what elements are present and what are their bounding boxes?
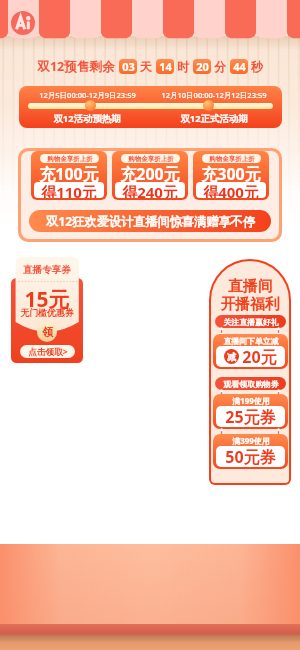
staticText: 双12活动预热期 [53, 112, 121, 125]
staticText: 得110元 [41, 182, 97, 198]
staticText: 12月5日00:00-12月9日23:59 [39, 90, 136, 100]
staticText: 关注直播赢好礼 [223, 317, 279, 327]
button[interactable]: 直播专享券 [11, 257, 83, 363]
button[interactable]: 关注直播赢好礼 [215, 315, 286, 328]
button[interactable]: 领 [37, 322, 57, 342]
staticText: 03 [122, 59, 135, 74]
staticText: 秒 [251, 59, 263, 74]
button[interactable]: 点击领取> [20, 345, 75, 358]
staticText: 天 [140, 59, 152, 74]
button[interactable]: Brand logo [11, 11, 35, 35]
staticText: 满199使用 [232, 396, 270, 407]
button[interactable]: 购物金享折上折 [31, 151, 107, 200]
staticText: 双12正式活动期 [180, 112, 248, 125]
staticText: 购物金享折上折 [47, 155, 93, 163]
staticText: 得400元 [203, 182, 259, 198]
button[interactable]: 直播间下单立减 [213, 334, 288, 369]
staticText: 充200元 [120, 163, 180, 185]
staticText: 满399使用 [232, 436, 270, 447]
staticText: 得240元 [122, 182, 178, 198]
staticText: 点击领取> [28, 346, 68, 358]
staticText: 领 [42, 325, 53, 339]
staticText: 44 [233, 59, 246, 74]
button[interactable]: 购物金享折上折 [112, 151, 188, 200]
staticText: 直播间下单立减 [223, 336, 279, 346]
staticText: 开播福利 [220, 295, 280, 314]
staticText: 20 [196, 59, 209, 74]
staticText: 观看领取购物券 [223, 379, 279, 389]
staticText: 减 [227, 351, 236, 362]
staticText: 20元 [242, 346, 277, 367]
staticText: 15元 [24, 285, 70, 314]
button[interactable]: 观看领取购物券 [215, 377, 286, 390]
staticText: 直播间 [228, 277, 273, 296]
staticText: 购物金享折上折 [209, 155, 255, 163]
staticText: 双12狂欢爱设计直播间惊喜满赠享不停 [46, 213, 255, 230]
staticText: 分 [214, 59, 226, 74]
staticText: 50元券 [225, 446, 276, 467]
staticText: 时 [177, 59, 189, 74]
button[interactable]: 满399使用 [213, 434, 288, 469]
staticText: 充100元 [39, 163, 99, 185]
button[interactable]: 双12狂欢爱设计直播间惊喜满赠享不停 [29, 210, 271, 232]
button[interactable]: 满199使用 [213, 394, 288, 429]
staticText: 14 [159, 59, 172, 74]
staticText: 直播专享券 [23, 264, 71, 276]
button[interactable]: 购物金享折上折 [193, 151, 269, 200]
staticText: 充300元 [201, 163, 261, 185]
staticText: 购物金享折上折 [128, 155, 174, 163]
staticText: 12月10日00:00-12月12日23:59 [161, 90, 267, 100]
staticText: 无门槛优惠券 [20, 307, 74, 318]
staticText: 25元券 [225, 406, 276, 427]
staticText: 双12预售剩余 [37, 58, 115, 75]
